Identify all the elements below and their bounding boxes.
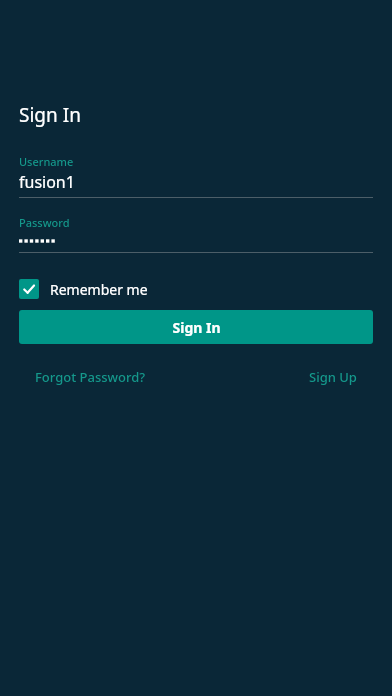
staticText: Sign In [172,318,221,337]
button[interactable]: Sign In [19,310,373,344]
staticText: Username [19,154,74,169]
staticText: Forgot Password? [35,368,146,386]
button[interactable]: Remember me checkbox [19,279,148,299]
staticText: Remember me [50,280,148,299]
button[interactable]: Sign Up [305,366,373,388]
staticText: Password [19,215,70,230]
staticText: Sign Up [309,368,357,386]
button[interactable]: Forgot Password? [19,366,150,388]
other: Remember me checkbox [19,279,39,299]
staticText: Sign In [19,102,81,128]
staticText: fusion1 [19,171,75,193]
